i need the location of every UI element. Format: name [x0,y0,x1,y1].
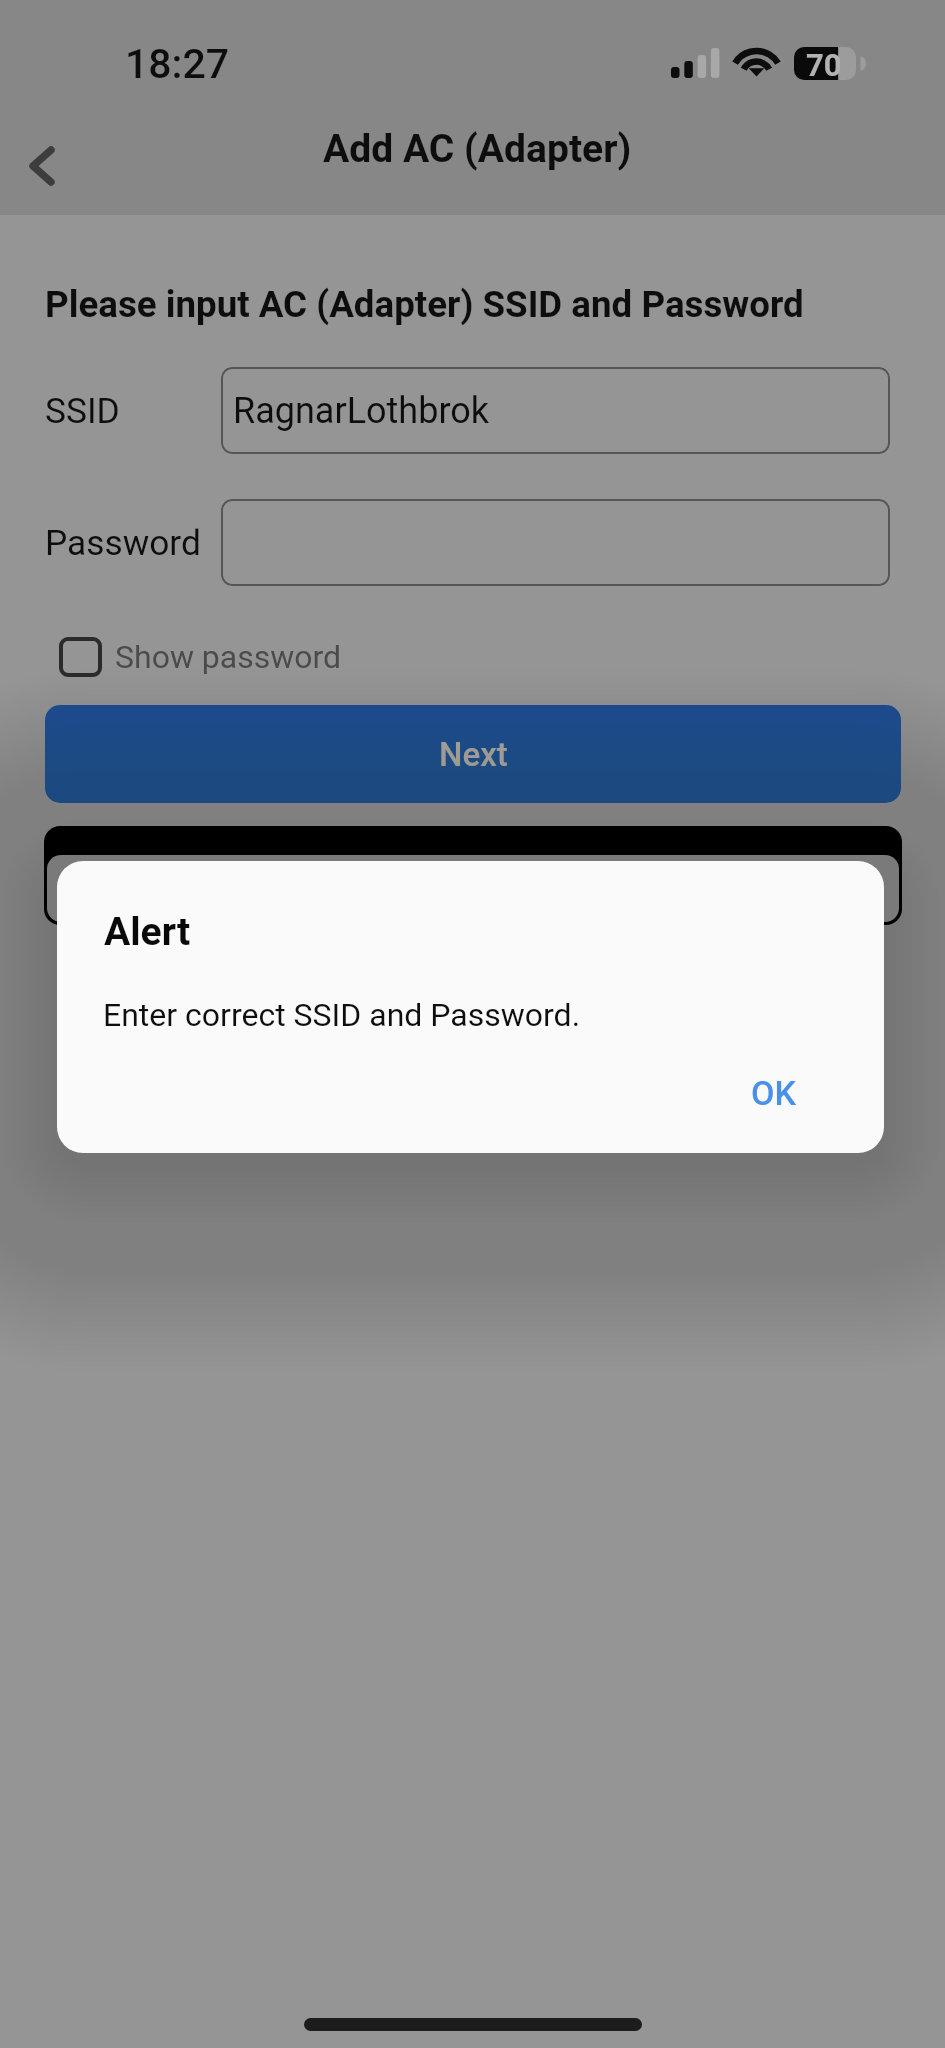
staticText: RagnarLothbrok [233,390,490,432]
button[interactable] [221,499,890,586]
button[interactable]: Back [8,126,86,204]
button[interactable]: Next [45,705,901,803]
button[interactable]: OK [727,1057,820,1129]
staticText: Please input AC (Adapter) SSID and Passw… [45,283,804,326]
button[interactable]: Show password [59,637,342,677]
staticText: Show password [115,638,342,676]
staticText: Add AC (Adapter) [323,126,632,172]
staticText: SSID [45,390,120,431]
staticText: Alert [104,909,191,955]
button[interactable]: RagnarLothbrok [221,367,890,454]
staticText: 18:27 [125,40,230,88]
staticText: OK [751,1073,796,1113]
staticText: Password [45,522,201,563]
staticText: Enter correct SSID and Password. [103,996,581,1034]
staticText: 70 [806,47,842,83]
staticText: Next [439,735,508,774]
